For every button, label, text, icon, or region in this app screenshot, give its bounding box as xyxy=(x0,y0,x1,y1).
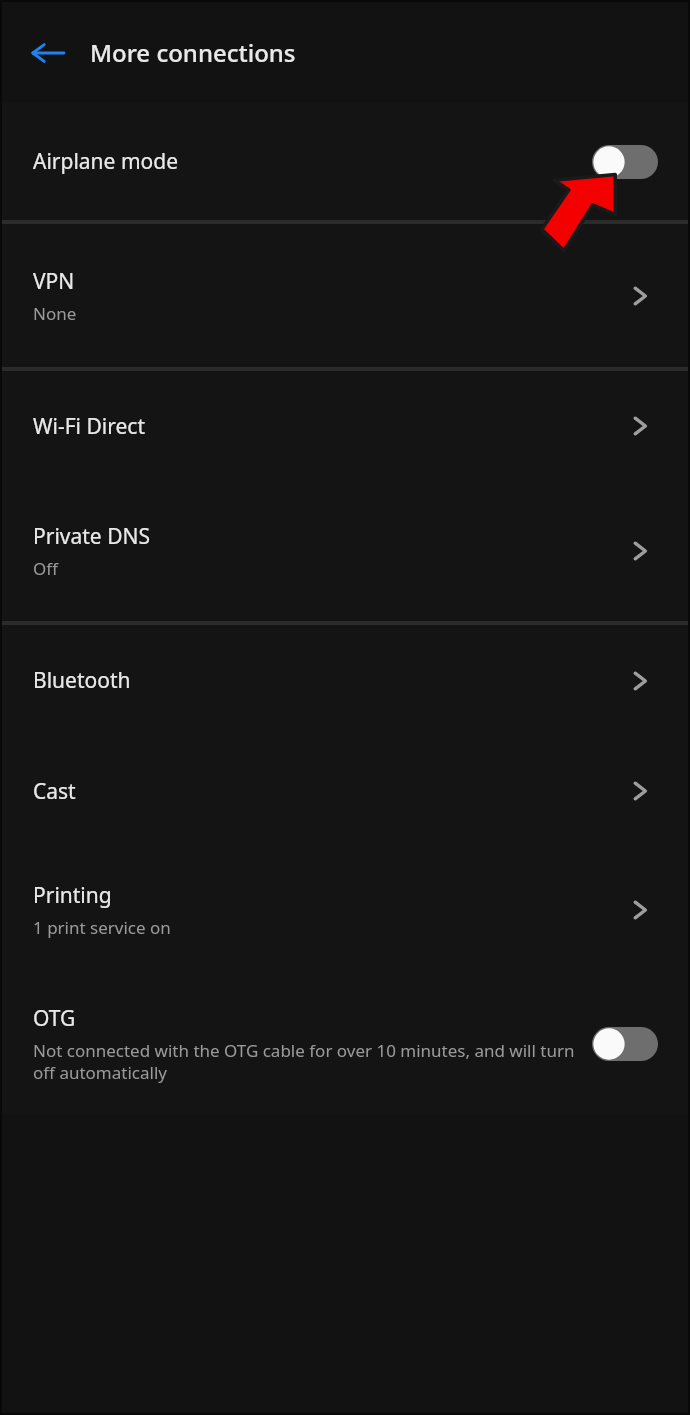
button[interactable]: Airplane mode toggle xyxy=(592,137,658,187)
staticText: Airplane mode xyxy=(33,147,179,176)
button[interactable]: Bluetooth xyxy=(2,625,688,736)
staticText: More connections xyxy=(90,36,296,69)
staticText: Cast xyxy=(33,777,76,806)
button[interactable]: Back xyxy=(18,23,78,83)
staticText: Printing xyxy=(33,881,112,910)
staticText: Wi-Fi Direct xyxy=(33,412,145,441)
button[interactable]: Printing xyxy=(2,846,688,974)
button[interactable]: Cast xyxy=(2,736,688,846)
staticText: Bluetooth xyxy=(33,666,131,695)
button[interactable]: OTG xyxy=(2,974,688,1114)
staticText: Not connected with the OTG cable for ove… xyxy=(33,1039,582,1084)
staticText: OTG xyxy=(33,1004,76,1033)
staticText: VPN xyxy=(33,267,75,296)
button[interactable]: Private DNS xyxy=(2,481,688,621)
staticText: 1 print service on xyxy=(33,916,171,939)
button[interactable]: Wi-Fi Direct xyxy=(2,371,688,481)
button[interactable]: Airplane mode xyxy=(2,103,688,220)
staticText: Off xyxy=(33,557,58,580)
button[interactable]: OTG toggle xyxy=(592,1019,658,1069)
staticText: Private DNS xyxy=(33,522,150,551)
staticText: None xyxy=(33,302,77,325)
button[interactable]: VPN xyxy=(2,224,688,367)
